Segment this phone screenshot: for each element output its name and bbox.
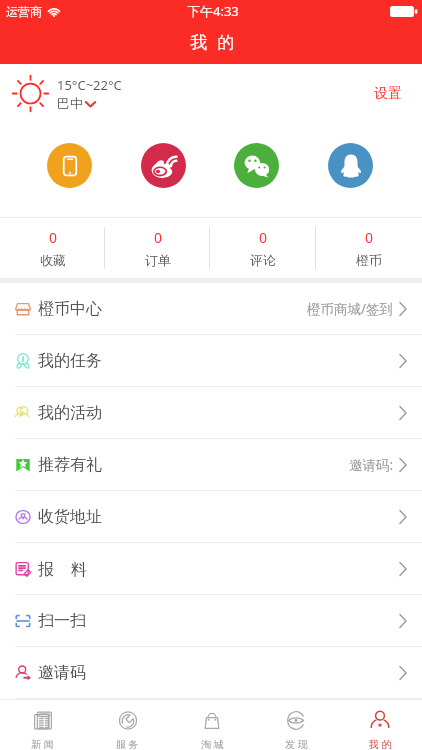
staticText: 我的活动 [38, 403, 102, 423]
staticText: 报 料 [38, 558, 87, 580]
staticText: 我 的 [190, 30, 238, 53]
button[interactable]: 发 现 [254, 700, 338, 750]
button[interactable]: 0 [0, 218, 105, 278]
button[interactable]: 报 料 [0, 543, 422, 594]
staticText: 下午4:33 [187, 2, 239, 20]
staticText: 15°C~22°C [57, 76, 122, 94]
button[interactable]: WeChat [234, 143, 279, 188]
staticText: 收藏 [40, 252, 66, 268]
staticText: 我的任务 [38, 351, 102, 371]
button[interactable]: 设置 [368, 79, 408, 109]
button[interactable]: 橙币中心 [0, 283, 422, 334]
staticText: 邀请码 [38, 663, 86, 683]
staticText: 订单 [145, 252, 171, 268]
button[interactable]: 收货地址 [0, 491, 422, 542]
button[interactable]: 我的任务 [0, 335, 422, 386]
staticText: 0 [259, 228, 268, 247]
staticText: 服 务 [116, 737, 139, 750]
staticText: 橙币中心 [38, 299, 102, 319]
staticText: 我 的 [369, 737, 392, 750]
staticText: 扫一扫 [38, 611, 86, 631]
button[interactable]: 0 [210, 218, 316, 278]
staticText: 收货地址 [38, 507, 102, 527]
button[interactable]: 服 务 [85, 700, 170, 750]
button[interactable]: 我的活动 [0, 387, 422, 438]
staticText: 推荐有礼 [38, 455, 102, 475]
button[interactable]: 扫一扫 [0, 595, 422, 646]
staticText: 巴中 [57, 95, 83, 111]
staticText: 0 [49, 228, 58, 247]
staticText: 运营商 [6, 4, 42, 19]
staticText: 橙币 [356, 252, 382, 268]
button[interactable]: QQ [328, 143, 373, 188]
staticText: 0 [154, 228, 163, 247]
button[interactable]: Weibo [141, 143, 186, 188]
staticText: 邀请码: [349, 456, 394, 474]
button[interactable]: 邀请码 [0, 647, 422, 698]
button[interactable]: Phone [47, 143, 92, 188]
button[interactable]: 推荐有礼 [0, 439, 422, 490]
staticText: 淘 城 [201, 737, 224, 750]
staticText: 新 闻 [31, 737, 54, 750]
staticText: 0 [365, 228, 374, 247]
staticText: 橙币商城/签到 [307, 300, 394, 318]
button[interactable]: 0 [105, 218, 210, 278]
button[interactable]: 新 闻 [0, 700, 85, 750]
button[interactable]: 我 的 [338, 700, 422, 750]
staticText: 设置 [374, 85, 402, 103]
staticText: 发 现 [285, 737, 308, 750]
button[interactable]: 0 [316, 218, 422, 278]
staticText: 评论 [250, 252, 276, 268]
button[interactable]: 淘 城 [170, 700, 254, 750]
